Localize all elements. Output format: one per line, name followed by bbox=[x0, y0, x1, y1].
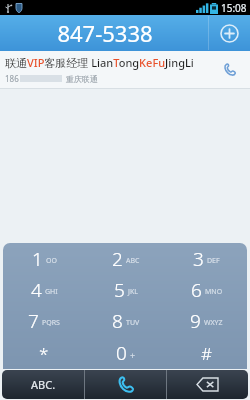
staticText: 重庆联通 bbox=[66, 74, 98, 84]
staticText: PQRS bbox=[42, 318, 60, 328]
button[interactable]: 2 bbox=[85, 243, 166, 274]
staticText: TUV bbox=[126, 318, 140, 328]
button[interactable]: 7 bbox=[3, 305, 85, 337]
staticText: MNO bbox=[205, 287, 223, 297]
staticText: JKL bbox=[128, 287, 138, 297]
staticText: 2 bbox=[112, 246, 123, 272]
button[interactable]: # bbox=[166, 337, 247, 369]
button[interactable]: 4 bbox=[3, 274, 85, 305]
button[interactable]: 0 bbox=[85, 337, 166, 369]
button[interactable]: 9 bbox=[166, 305, 247, 337]
button[interactable]: 联通VIP客服经理 LianTongKeFuJingLi bbox=[0, 51, 250, 88]
staticText: 8 bbox=[112, 308, 123, 334]
staticText: OO bbox=[46, 256, 57, 266]
button[interactable]: * bbox=[3, 337, 85, 369]
staticText: 3 bbox=[193, 246, 204, 272]
staticText: 6 bbox=[191, 277, 202, 303]
staticText: 847-5338 bbox=[57, 18, 153, 48]
staticText: 5 bbox=[114, 277, 125, 303]
button[interactable]: 5 bbox=[85, 274, 166, 305]
staticText: GHI bbox=[45, 287, 58, 297]
button[interactable]: Call bbox=[85, 370, 166, 399]
staticText: 7 bbox=[28, 308, 39, 334]
button[interactable]: 1 bbox=[3, 243, 85, 274]
staticText: 1 bbox=[32, 246, 43, 272]
staticText: + bbox=[130, 349, 136, 361]
staticText: 186 bbox=[5, 73, 19, 84]
staticText: 0 bbox=[116, 340, 127, 366]
staticText: WXYZ bbox=[204, 318, 223, 328]
button[interactable]: Add contact bbox=[209, 15, 250, 51]
button[interactable]: Delete bbox=[167, 370, 248, 399]
staticText: DEF bbox=[207, 256, 220, 266]
button[interactable]: Call contact bbox=[212, 51, 246, 88]
staticText: ABC bbox=[126, 256, 140, 266]
button[interactable]: 8 bbox=[85, 305, 166, 337]
staticText: 15:08 bbox=[221, 1, 247, 15]
staticText: # bbox=[201, 342, 212, 365]
staticText: 9 bbox=[190, 308, 201, 334]
staticText: 4 bbox=[31, 277, 42, 303]
button[interactable]: 6 bbox=[166, 274, 247, 305]
button[interactable]: ABC. bbox=[2, 370, 84, 399]
staticText: 联通VIP客服经理 LianTongKeFuJingLi bbox=[5, 55, 194, 70]
button[interactable]: 3 bbox=[166, 243, 247, 274]
staticText: * bbox=[39, 342, 49, 365]
staticText: ABC. bbox=[31, 377, 56, 392]
